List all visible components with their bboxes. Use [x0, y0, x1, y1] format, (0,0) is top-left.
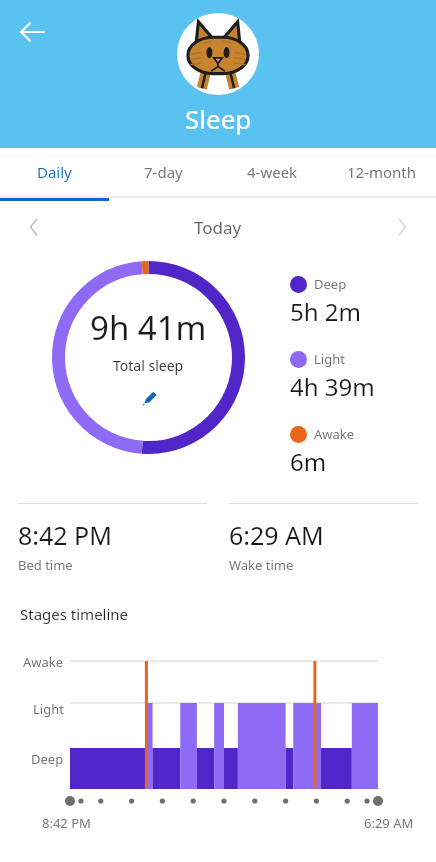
button[interactable]: 12-month	[327, 148, 436, 196]
staticText: Today	[194, 216, 242, 239]
staticText: Light	[33, 700, 64, 718]
staticText: Deep	[314, 275, 347, 293]
button[interactable]: 7-day	[109, 148, 218, 196]
staticText: 7-day	[144, 162, 183, 182]
staticText: Light	[314, 350, 345, 368]
staticText: 5h 2m	[290, 295, 361, 328]
button[interactable]: 6:29 AM	[229, 503, 418, 574]
staticText: 9h 41m	[90, 305, 207, 350]
staticText: 12-month	[347, 162, 417, 182]
staticText: 6:29 AM	[364, 814, 414, 832]
button[interactable]: 8:42 PM	[18, 503, 207, 574]
staticText: Sleep	[185, 101, 252, 136]
staticText: Awake	[314, 425, 355, 443]
staticText: Total sleep	[113, 356, 184, 375]
button[interactable]: Profile	[177, 13, 259, 95]
staticText: Stages timeline	[20, 604, 129, 624]
staticText: Awake	[23, 653, 64, 671]
button[interactable]: 4-week	[218, 148, 327, 196]
staticText: 6m	[290, 445, 327, 478]
button[interactable]: Daily	[0, 148, 109, 196]
staticText: Daily	[37, 162, 72, 182]
button[interactable]: Previous day	[14, 207, 54, 247]
staticText: 8:42 PM	[18, 518, 112, 552]
staticText: Bed time	[18, 556, 73, 574]
staticText: 6:29 AM	[229, 518, 324, 552]
staticText: Deep	[31, 750, 64, 768]
button[interactable]: Next day	[382, 207, 422, 247]
button[interactable]: Back	[8, 8, 56, 56]
staticText: Wake time	[229, 556, 294, 574]
staticText: 8:42 PM	[42, 814, 91, 832]
staticText: 4h 39m	[290, 370, 375, 403]
staticText: 4-week	[247, 162, 298, 182]
button[interactable]: Edit sleep	[136, 385, 162, 411]
